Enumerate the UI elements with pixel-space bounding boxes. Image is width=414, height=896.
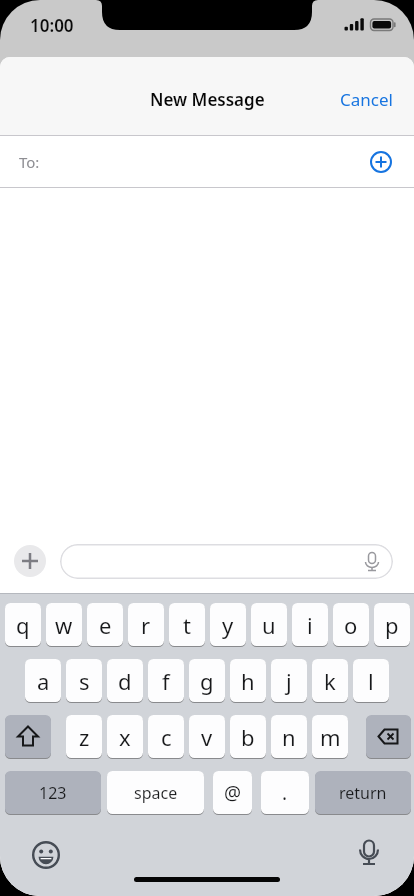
button[interactable]: e — [87, 603, 123, 646]
staticText: x — [119, 722, 131, 752]
staticText: c — [161, 722, 172, 752]
button[interactable]: i — [292, 603, 328, 646]
staticText: b — [241, 722, 255, 752]
button[interactable]: b — [230, 715, 266, 758]
staticText: New Message — [150, 88, 265, 111]
button[interactable]: n — [271, 715, 307, 758]
staticText: w — [55, 610, 73, 640]
staticText: h — [241, 666, 255, 696]
button[interactable]: s — [66, 659, 102, 702]
button[interactable] — [366, 715, 411, 758]
staticText: l — [368, 666, 374, 696]
button[interactable]: . — [261, 771, 309, 814]
button[interactable]: r — [128, 603, 164, 646]
button[interactable]: x — [107, 715, 143, 758]
staticText: Cancel — [340, 88, 393, 111]
staticText: To: — [19, 152, 40, 172]
button[interactable]: l — [353, 659, 389, 702]
button[interactable]: z — [66, 715, 102, 758]
button[interactable]: w — [46, 603, 82, 646]
button[interactable]: return — [315, 771, 411, 814]
staticText: r — [141, 610, 151, 640]
button[interactable] — [60, 544, 393, 579]
button[interactable]: m — [312, 715, 348, 758]
button[interactable]: a — [25, 659, 61, 702]
button[interactable] — [31, 840, 61, 870]
staticText: n — [282, 722, 296, 752]
staticText: . — [282, 780, 288, 806]
button[interactable] — [353, 838, 385, 870]
staticText: space — [134, 782, 178, 804]
staticText: v — [201, 722, 213, 752]
staticText: @ — [224, 780, 242, 806]
staticText: 123 — [39, 782, 67, 804]
staticText: s — [79, 666, 90, 696]
button[interactable] — [14, 545, 46, 577]
staticText: z — [79, 722, 90, 752]
button[interactable]: u — [251, 603, 287, 646]
button[interactable]: p — [374, 603, 410, 646]
staticText: y — [222, 610, 234, 640]
staticText: o — [344, 610, 358, 640]
staticText: f — [162, 666, 170, 696]
button[interactable]: To: — [0, 136, 414, 187]
button[interactable]: space — [107, 771, 204, 814]
button[interactable]: g — [189, 659, 225, 702]
staticText: e — [99, 610, 112, 640]
staticText: t — [183, 610, 191, 640]
button[interactable]: v — [189, 715, 225, 758]
staticText: i — [307, 610, 313, 640]
button[interactable]: d — [107, 659, 143, 702]
button[interactable]: h — [230, 659, 266, 702]
button[interactable]: c — [148, 715, 184, 758]
staticText: 10:00 — [30, 14, 74, 37]
button[interactable]: k — [312, 659, 348, 702]
staticText: q — [16, 610, 30, 640]
button[interactable]: q — [5, 603, 41, 646]
staticText: k — [324, 666, 336, 696]
staticText: a — [37, 666, 50, 696]
button[interactable]: Cancel — [340, 88, 393, 111]
button[interactable]: t — [169, 603, 205, 646]
staticText: u — [262, 610, 276, 640]
button[interactable]: f — [148, 659, 184, 702]
button[interactable]: 123 — [5, 771, 101, 814]
staticText: return — [339, 782, 387, 804]
staticText: m — [320, 722, 341, 752]
staticText: j — [286, 666, 292, 696]
button[interactable] — [5, 715, 51, 758]
staticText: d — [118, 666, 132, 696]
staticText: p — [385, 610, 399, 640]
button[interactable]: o — [333, 603, 369, 646]
button[interactable]: y — [210, 603, 246, 646]
button[interactable]: j — [271, 659, 307, 702]
button[interactable]: @ — [213, 771, 252, 814]
staticText: g — [200, 666, 214, 696]
